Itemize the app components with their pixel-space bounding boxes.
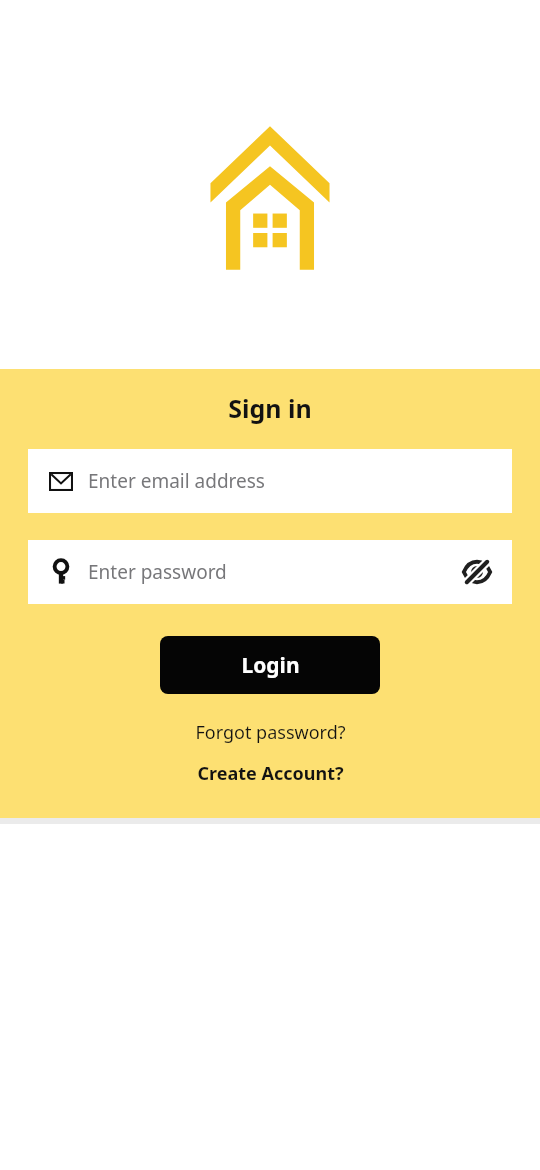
button[interactable]: Login [160, 636, 380, 694]
staticText: Enter password [88, 559, 460, 585]
button[interactable]: Enter password [28, 540, 512, 604]
button[interactable]: Forgot password? [185, 716, 356, 749]
staticText: Forgot password? [195, 720, 346, 745]
staticText: Create Account? [197, 761, 344, 786]
staticText: Enter email address [88, 468, 494, 494]
button[interactable]: Show password [460, 555, 494, 589]
button[interactable]: Create Account? [187, 757, 354, 790]
staticText: Login [241, 651, 300, 680]
button[interactable]: Enter email address [28, 449, 512, 513]
staticText: Sign in [228, 391, 312, 425]
other: App logo [208, 124, 332, 272]
